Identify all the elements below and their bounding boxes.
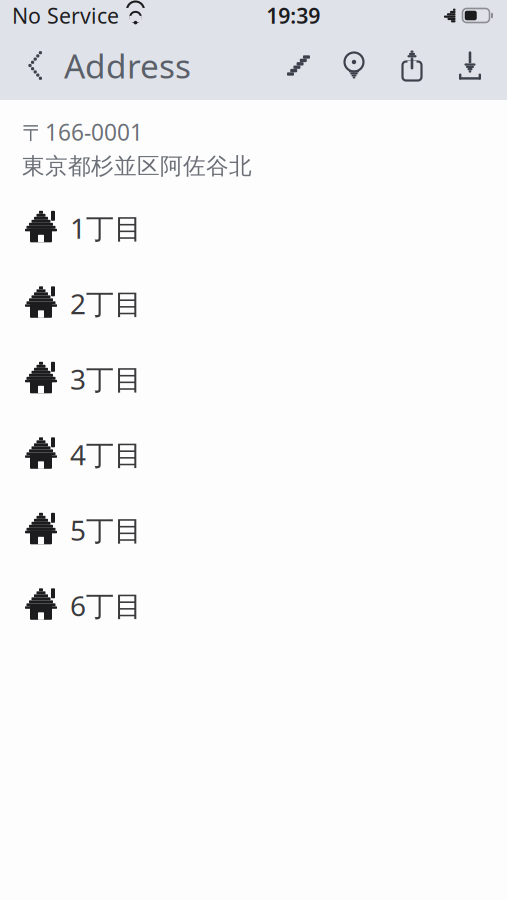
button[interactable]: 4丁目 xyxy=(0,417,507,492)
staticText: No Service xyxy=(12,1,119,30)
button[interactable]: 6丁目 xyxy=(0,568,507,643)
staticText: 2丁目 xyxy=(70,285,142,322)
button[interactable]: 1丁目 xyxy=(0,190,507,266)
button[interactable]: 3丁目 xyxy=(0,341,507,417)
staticText: 5丁目 xyxy=(70,511,142,548)
button[interactable]: Share xyxy=(383,31,441,100)
staticText: 1丁目 xyxy=(70,209,142,246)
staticText: 4丁目 xyxy=(70,436,142,473)
staticText: Address xyxy=(64,43,191,88)
staticText: 6丁目 xyxy=(70,587,142,624)
staticText: 19:39 xyxy=(266,1,320,30)
button[interactable]: Show on map xyxy=(325,31,383,100)
staticText: 3丁目 xyxy=(70,360,142,397)
button[interactable]: Edit xyxy=(267,31,325,100)
staticText: 〒166-0001 xyxy=(22,117,143,147)
button[interactable]: Download xyxy=(441,31,499,100)
button[interactable]: Back xyxy=(8,31,56,100)
button[interactable]: 5丁目 xyxy=(0,492,507,568)
button[interactable]: 2丁目 xyxy=(0,266,507,341)
staticText: 東京都杉並区阿佐谷北 xyxy=(22,152,252,180)
